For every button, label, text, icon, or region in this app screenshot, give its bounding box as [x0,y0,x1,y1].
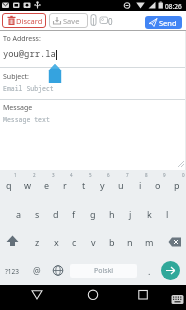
staticText: d [53,208,59,220]
staticText: you@grr.la [3,48,56,60]
button[interactable]: c [65,235,83,249]
staticText: k [147,208,152,220]
staticText: l [166,208,169,220]
staticText: m [145,236,154,248]
staticText: 7 [126,172,129,178]
button[interactable]: o [149,178,167,192]
staticText: g [90,208,96,220]
button[interactable]: x [47,235,65,249]
staticText: f [72,208,76,220]
button[interactable]: d [47,207,65,221]
staticText: Save [63,16,80,26]
staticText: v [91,236,96,248]
button[interactable]: m [140,235,158,249]
staticText: ?123 [5,267,19,276]
staticText: 5 [89,172,92,178]
staticText: y [100,179,105,191]
staticText: x [54,236,59,248]
button[interactable]: g [84,207,102,221]
staticText: z [35,236,40,248]
staticText: 0 [182,172,185,178]
staticText: c [72,236,77,248]
button[interactable] [2,234,23,250]
staticText: 0 [108,16,113,27]
button[interactable]: q [0,178,18,192]
button[interactable]: ?123 [3,264,21,278]
staticText: 08:26 [165,2,182,11]
staticText: 9 [163,172,166,178]
button[interactable]: To Address: [0,31,186,170]
button[interactable]: j [121,207,139,221]
staticText: Discard [16,16,43,26]
staticText: n [127,236,133,248]
button[interactable] [133,285,153,305]
button[interactable] [163,234,184,250]
button[interactable]: Polski [70,264,137,278]
button[interactable]: n [121,235,139,249]
button[interactable]: f [65,207,83,221]
staticText: . [148,265,151,277]
staticText: 2 [33,172,36,178]
button[interactable]: Discard [2,13,46,28]
button[interactable]: z [28,235,46,249]
button[interactable]: u [112,178,130,192]
staticText: @ [33,265,41,277]
button[interactable] [50,263,66,278]
button[interactable]: w [19,178,37,192]
staticText: 3 [52,172,55,178]
button[interactable] [161,261,180,280]
staticText: 8 [145,172,148,178]
staticText: 1 [14,172,17,178]
button[interactable] [27,285,47,305]
staticText: 6 [107,172,110,178]
staticText: o [155,179,161,191]
staticText: h [109,208,115,220]
staticText: u [118,179,124,191]
staticText: To Address: [3,34,41,44]
button[interactable]: Send [145,16,182,29]
staticText: t [82,179,86,191]
button[interactable]: k [140,207,158,221]
button[interactable]: r [56,178,74,192]
staticText: s [35,208,40,220]
staticText: Polski [94,266,114,276]
staticText: Message text [3,115,50,124]
button[interactable]: e [38,178,56,192]
button[interactable]: v [84,235,102,249]
button[interactable]: p [168,178,186,192]
button[interactable]: s [28,207,46,221]
staticText: w [24,179,32,191]
button[interactable]: 0 [89,13,116,28]
button[interactable]: a [10,207,28,221]
staticText: Subject: [3,72,29,82]
staticText: Message [3,103,33,113]
staticText: q [6,179,12,191]
staticText: Send [159,18,177,28]
button[interactable]: t [75,178,93,192]
staticText: Email Subject [3,84,54,93]
button[interactable]: . [140,264,158,278]
staticText: e [44,179,50,191]
button[interactable]: l [158,207,176,221]
button[interactable] [83,285,103,305]
staticText: 4 [70,172,73,178]
button[interactable]: h [103,207,121,221]
staticText: p [174,179,180,191]
button[interactable]: @ [28,264,46,278]
staticText: j [129,208,132,220]
button[interactable]: b [103,235,121,249]
button[interactable]: Save [49,13,88,28]
button[interactable]: y [93,178,111,192]
button[interactable]: i [131,178,149,192]
staticText: r [63,179,67,191]
staticText: a [16,208,22,220]
staticText: i [139,179,142,191]
staticText: b [109,236,115,248]
